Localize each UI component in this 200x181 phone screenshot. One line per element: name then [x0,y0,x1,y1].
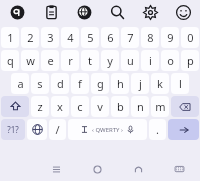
button[interactable]: s [31,73,49,94]
staticText: c [77,99,83,114]
staticText: u [127,53,134,68]
button[interactable]: / [49,119,66,140]
staticText: e [47,53,54,68]
button[interactable]: u [121,50,139,71]
staticText: w [26,53,35,68]
button[interactable]: j [131,73,149,94]
button[interactable]: d [51,73,69,94]
button[interactable]: c [71,96,89,117]
button[interactable]: p [181,50,199,71]
staticText: 3 [47,30,54,45]
staticText: x [57,99,63,114]
staticText: . [156,122,159,137]
staticText: k [157,76,163,91]
button[interactable]: Clipboard [34,0,68,25]
button[interactable]: r [61,50,79,71]
button[interactable]: z [31,96,49,117]
button[interactable]: e [41,50,59,71]
button[interactable]: w [21,50,39,71]
staticText: y [107,53,113,68]
button[interactable]: g [91,73,109,94]
button[interactable]: 6 [101,27,119,48]
staticText: a [17,76,24,91]
button[interactable]: Home [77,158,118,181]
button[interactable]: 4 [61,27,79,48]
staticText: 0 [187,30,194,45]
button[interactable]: o [161,50,179,71]
button[interactable]: Emoji [167,0,200,25]
button[interactable]: x [51,96,69,117]
staticText: v [97,99,103,114]
button[interactable]: m [151,96,169,117]
button[interactable]: t [81,50,99,71]
button[interactable]: Search [101,0,134,25]
staticText: b [117,99,124,114]
button[interactable]: i [141,50,159,71]
button[interactable]: k [151,73,169,94]
staticText: ?1? [7,124,19,135]
staticText: o [167,53,174,68]
button[interactable]: Translate [68,0,101,25]
staticText: n [137,99,144,114]
staticText: t [88,53,92,68]
button[interactable]: Recents [36,158,77,181]
staticText: r [68,53,73,68]
staticText: g [97,76,104,91]
button[interactable]: f [71,73,89,94]
button[interactable]: Enter [168,119,199,140]
staticText: 2 [27,30,34,45]
staticText: d [57,76,64,91]
button[interactable]: 0 [181,27,199,48]
staticText: f [78,76,82,91]
staticText: ‹ QWERTY › [92,126,123,134]
button[interactable]: y [101,50,119,71]
staticText: 7 [127,30,134,45]
staticText: 4 [67,30,74,45]
staticText: s [37,76,43,91]
staticText: 6 [107,30,114,45]
button[interactable]: 8 [141,27,159,48]
staticText: q [7,53,14,68]
staticText: m [155,99,166,114]
button[interactable]: 5 [81,27,99,48]
button[interactable]: b [111,96,129,117]
button[interactable]: Change keyboard language [27,119,47,140]
staticText: 8 [147,30,154,45]
staticText: j [139,76,142,91]
button[interactable]: ?1? [1,119,25,140]
button[interactable]: . [149,119,166,140]
button[interactable]: h [111,73,129,94]
button[interactable]: Space [68,119,147,140]
staticText: p [187,53,194,68]
button[interactable]: n [131,96,149,117]
staticText: 5 [87,30,94,45]
button[interactable]: 7 [121,27,139,48]
button[interactable]: q [1,50,19,71]
button[interactable]: 2 [21,27,39,48]
button[interactable]: Voice typing [0,0,34,25]
staticText: 9 [167,30,174,45]
staticText: l [179,76,182,91]
staticText: 1 [7,30,14,45]
button[interactable]: v [91,96,109,117]
button[interactable]: Back [118,158,159,181]
button[interactable]: Settings [134,0,167,25]
button[interactable]: l [171,73,189,94]
staticText: / [55,122,60,137]
button[interactable]: Backspace [171,96,199,117]
staticText: h [117,76,124,91]
button[interactable]: 9 [161,27,179,48]
button[interactable]: Shift [1,96,29,117]
button[interactable]: 3 [41,27,59,48]
button[interactable]: 1 [1,27,19,48]
staticText: i [149,53,152,68]
button[interactable]: Hide keyboard [159,158,200,181]
button[interactable]: a [11,73,29,94]
staticText: z [37,99,43,114]
